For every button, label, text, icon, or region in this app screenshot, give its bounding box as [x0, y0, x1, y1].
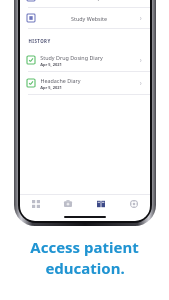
button[interactable]: Study Website: [20, 8, 150, 28]
staticText: Apr 5, 2021: [40, 85, 62, 90]
button[interactable]: Study Drug Dosing Diary: [20, 49, 150, 71]
button[interactable]: Headache Diary: [20, 72, 150, 94]
staticText: Access patient: [30, 237, 139, 257]
staticText: Apr 5, 2021: [40, 62, 62, 67]
staticText: Study Drug Dosing Diary: [40, 54, 103, 61]
staticText: HISTORY: [28, 38, 51, 44]
staticText: Visit Prep: [40, 0, 138, 1]
staticText: Study Website: [40, 15, 138, 22]
button[interactable]: Medication: [52, 195, 84, 213]
button[interactable]: Visit Prep: [20, 0, 150, 7]
staticText: education.: [45, 258, 125, 278]
button[interactable]: Support: [117, 195, 150, 213]
button[interactable]: Dashboard: [20, 195, 52, 213]
button[interactable]: Education: [84, 195, 117, 213]
staticText: Headache Diary: [40, 77, 81, 84]
